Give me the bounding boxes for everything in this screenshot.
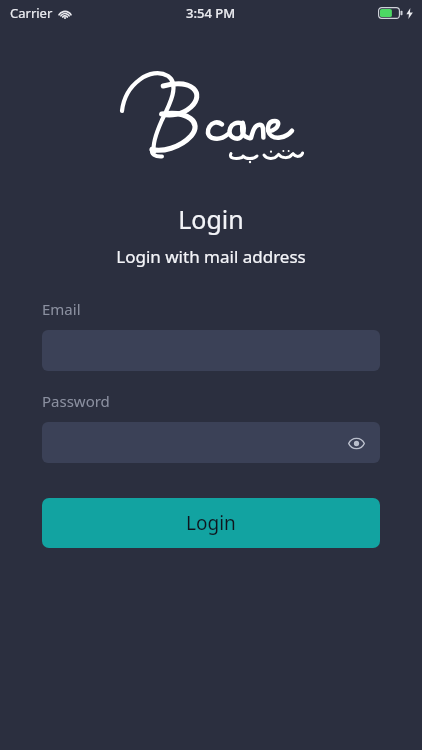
staticText: Email xyxy=(42,299,81,319)
button[interactable]: Show password xyxy=(42,422,380,463)
staticText: Carrier xyxy=(10,4,53,22)
staticText: 3:54 PM xyxy=(186,4,236,22)
staticText: Login with mail address xyxy=(0,245,422,268)
button[interactable]: Show password xyxy=(342,429,370,457)
staticText: Login xyxy=(186,510,236,536)
staticText: Login xyxy=(0,202,422,236)
button[interactable]: Login xyxy=(42,498,380,548)
staticText: Password xyxy=(42,391,110,411)
